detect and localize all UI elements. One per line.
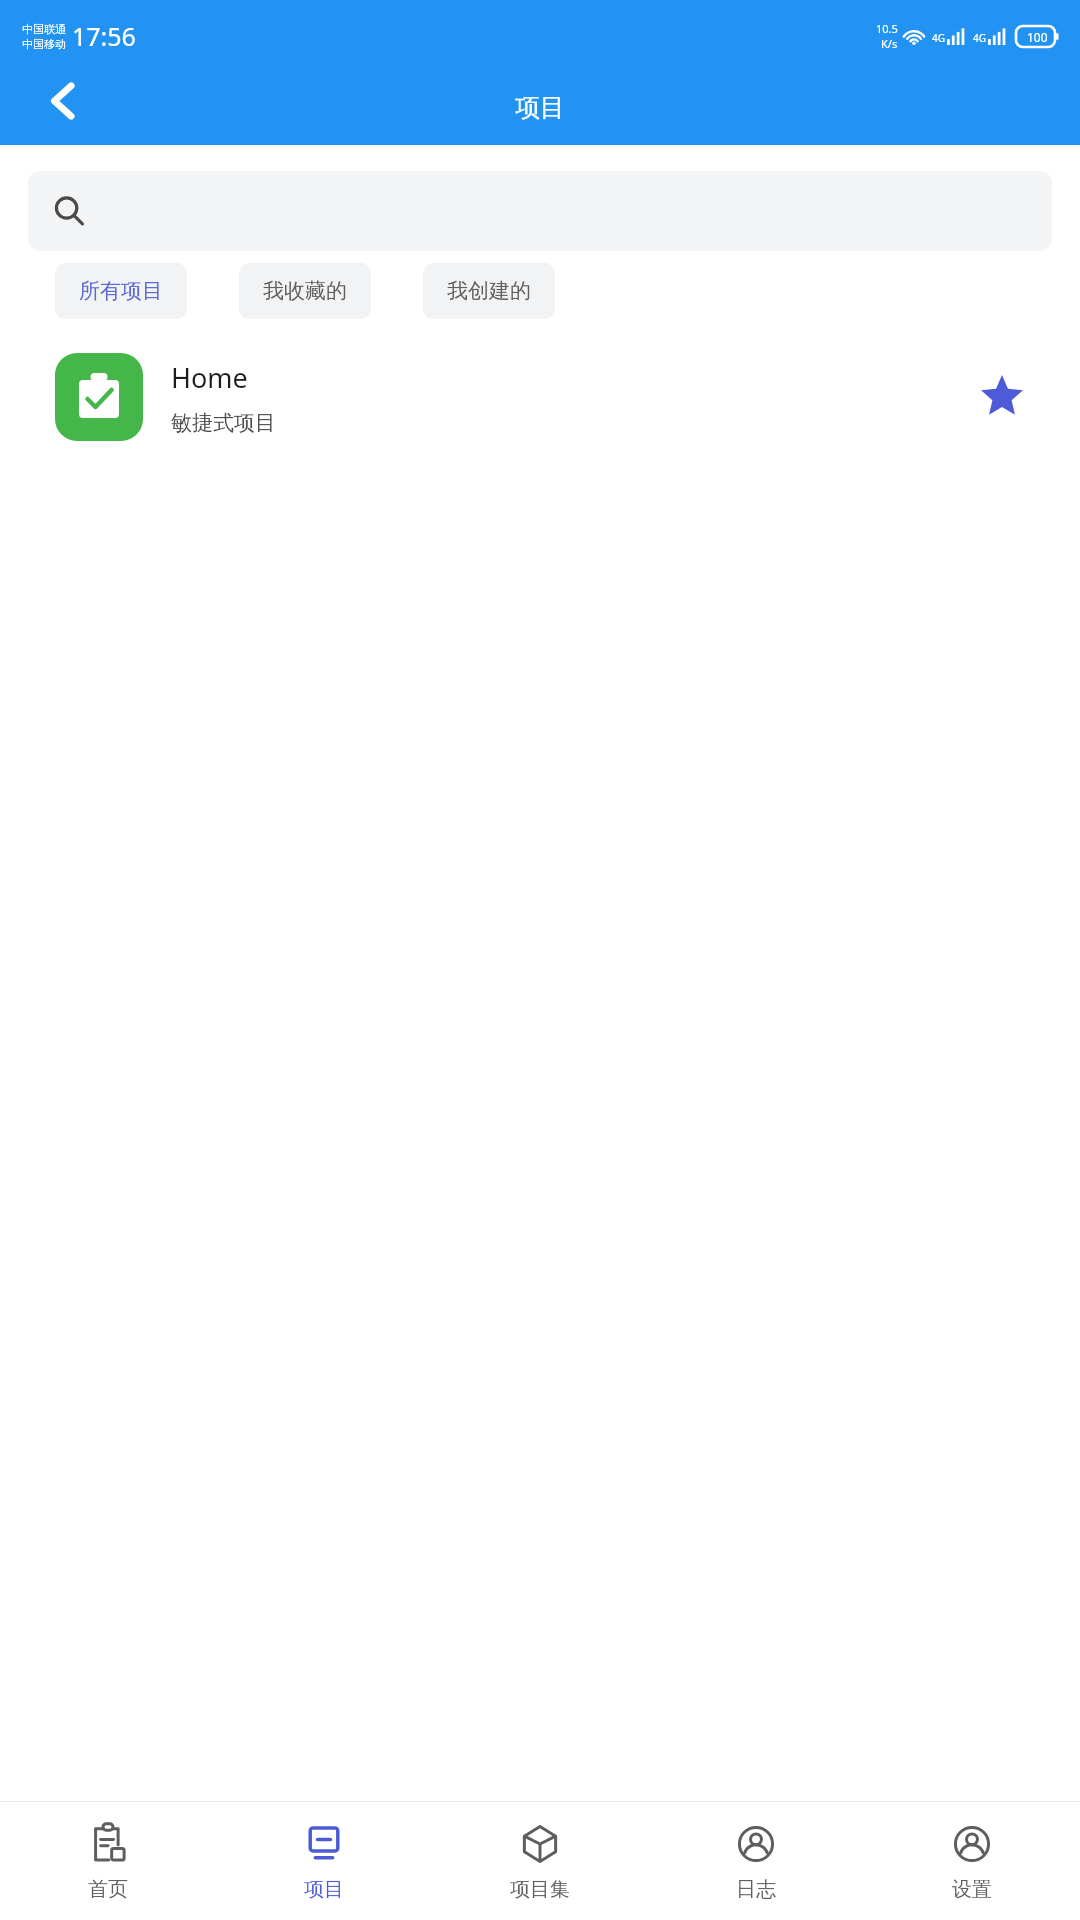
button[interactable]: 首页 [0, 1802, 216, 1920]
staticText: 4G [973, 31, 986, 45]
button[interactable] [28, 171, 1052, 251]
staticText: 敏捷式项目 [171, 410, 276, 436]
staticText: 17:56 [72, 19, 136, 53]
staticText: 设置 [952, 1877, 992, 1902]
staticText: 项目 [515, 92, 565, 123]
staticText: 中国移动 [22, 37, 66, 51]
staticText: 中国联通 [22, 22, 66, 36]
button[interactable]: 日志 [648, 1802, 864, 1920]
staticText: 我创建的 [447, 278, 531, 304]
staticText: 日志 [736, 1877, 776, 1902]
button[interactable]: 设置 [864, 1802, 1080, 1920]
staticText: 100 [1027, 29, 1048, 45]
staticText: 首页 [88, 1877, 128, 1902]
button[interactable]: 项目 [216, 1802, 432, 1920]
button[interactable]: 我收藏的 [239, 263, 371, 319]
staticText: 我收藏的 [263, 278, 347, 304]
staticText: 项目集 [510, 1877, 570, 1902]
button[interactable]: Favorite [972, 367, 1032, 427]
staticText: Home [171, 359, 248, 396]
staticText: 10.5 [876, 21, 898, 36]
button[interactable]: 我创建的 [423, 263, 555, 319]
button[interactable]: 所有项目 [55, 263, 187, 319]
staticText: 4G [932, 31, 945, 45]
button[interactable]: Home [0, 343, 1080, 451]
button[interactable]: 项目集 [432, 1802, 648, 1920]
staticText: 项目 [304, 1877, 344, 1902]
staticText: K/s [881, 36, 898, 51]
button[interactable]: Back [28, 65, 100, 137]
staticText: 所有项目 [79, 278, 163, 304]
